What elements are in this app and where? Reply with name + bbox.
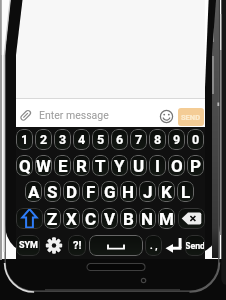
button[interactable]: C: [82, 208, 99, 229]
button[interactable]: [16, 208, 43, 229]
staticText: F: [86, 182, 96, 202]
button[interactable]: [16, 99, 156, 127]
button[interactable]: SYM: [16, 235, 40, 256]
button[interactable]: M: [158, 208, 175, 229]
staticText: P: [190, 156, 201, 176]
staticText: 6: [116, 132, 124, 147]
button[interactable]: R: [73, 155, 90, 176]
button[interactable]: 5: [92, 129, 109, 150]
staticText: N: [141, 209, 154, 229]
staticText: U: [133, 156, 145, 176]
staticText: 7: [135, 132, 143, 147]
button[interactable]: H: [120, 181, 137, 202]
staticText: 0: [192, 132, 200, 147]
staticText: C: [85, 209, 97, 229]
staticText: Y: [114, 156, 125, 176]
staticText: Z: [47, 209, 58, 229]
staticText: M: [159, 209, 174, 229]
staticText: J: [143, 182, 153, 202]
staticText: Q: [19, 156, 31, 176]
staticText: V: [104, 209, 116, 229]
staticText: B: [123, 209, 134, 229]
staticText: D: [66, 182, 78, 202]
button[interactable]: 4: [73, 129, 90, 150]
button[interactable]: [178, 208, 205, 229]
staticText: SEND: [181, 113, 201, 122]
button[interactable]: [159, 109, 174, 124]
button[interactable]: W: [35, 155, 52, 176]
button[interactable]: Q: [16, 155, 33, 176]
staticText: 4: [78, 132, 86, 147]
staticText: E: [58, 156, 68, 176]
staticText: 9: [173, 132, 181, 147]
staticText: I: [155, 156, 160, 176]
button[interactable]: I: [149, 155, 166, 176]
staticText: . ,: [150, 240, 158, 251]
staticText: L: [181, 182, 191, 202]
button[interactable]: N: [139, 208, 156, 229]
button[interactable]: 9: [168, 129, 185, 150]
button[interactable]: 6: [111, 129, 128, 150]
staticText: 1: [21, 132, 29, 147]
button[interactable]: A: [25, 181, 42, 202]
button[interactable]: F: [82, 181, 99, 202]
button[interactable]: [165, 235, 183, 256]
staticText: 5: [97, 132, 105, 147]
button[interactable]: T: [92, 155, 109, 176]
staticText: T: [95, 156, 106, 176]
staticText: ?!: [73, 239, 82, 252]
staticText: 3: [59, 132, 67, 147]
staticText: Send: [185, 241, 205, 251]
button[interactable]: J: [139, 181, 156, 202]
button[interactable]: O: [168, 155, 185, 176]
button[interactable]: . ,: [145, 235, 162, 256]
button[interactable]: U: [130, 155, 147, 176]
button[interactable]: X: [63, 208, 80, 229]
button[interactable]: P: [187, 155, 204, 176]
staticText: 8: [154, 132, 162, 147]
button[interactable]: 7: [130, 129, 147, 150]
staticText: W: [36, 156, 51, 176]
staticText: R: [76, 156, 87, 176]
button[interactable]: L: [177, 181, 194, 202]
button[interactable]: 3: [54, 129, 71, 150]
button[interactable]: V: [101, 208, 118, 229]
staticText: Enter message: [39, 109, 109, 121]
button[interactable]: B: [120, 208, 137, 229]
staticText: G: [104, 182, 116, 202]
staticText: SYM: [19, 240, 38, 251]
staticText: X: [66, 209, 77, 229]
button[interactable]: Z: [44, 208, 61, 229]
button[interactable]: 2: [35, 129, 52, 150]
staticText: A: [28, 182, 40, 202]
button[interactable]: S: [44, 181, 61, 202]
button[interactable]: ?!: [68, 235, 86, 256]
button[interactable]: Send: [185, 235, 205, 256]
button[interactable]: E: [54, 155, 71, 176]
button[interactable]: [89, 235, 143, 256]
button[interactable]: Y: [111, 155, 128, 176]
staticText: H: [122, 182, 135, 202]
button[interactable]: 1: [16, 129, 33, 150]
button[interactable]: K: [158, 181, 175, 202]
button[interactable]: SEND: [178, 108, 204, 126]
staticText: K: [161, 182, 172, 202]
button[interactable]: G: [101, 181, 118, 202]
staticText: O: [171, 156, 183, 176]
staticText: S: [47, 182, 58, 202]
button[interactable]: 8: [149, 129, 166, 150]
button[interactable]: [42, 235, 66, 256]
button[interactable]: D: [63, 181, 80, 202]
staticText: 2: [40, 132, 48, 147]
button[interactable]: 0: [187, 129, 204, 150]
